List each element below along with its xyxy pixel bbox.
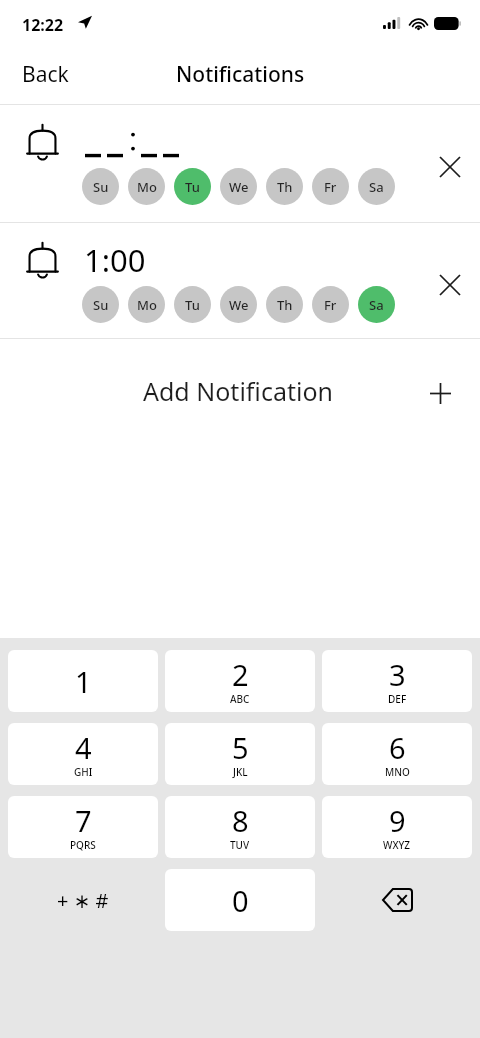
button[interactable]: Tu [174,286,211,323]
button[interactable]: + ∗ # [8,869,158,931]
button[interactable]: We [220,286,257,323]
staticText: 12:22 [22,14,64,36]
button[interactable]: Add notification [424,377,456,409]
staticText: Mo [137,296,157,314]
button[interactable]: Sa [358,168,395,205]
staticText: ABC [230,692,250,706]
button[interactable]: Fr [312,286,349,323]
staticText: 3 [389,655,406,694]
staticText: Sa [369,178,384,196]
staticText: 5 [232,728,249,767]
staticText: Back [22,60,69,89]
staticText: 1:00 [84,239,146,281]
staticText: 6 [389,728,406,767]
staticText: 8 [232,801,249,840]
staticText: 0 [232,881,249,920]
button[interactable]: Mo [128,286,165,323]
staticText: Add Notification [143,374,333,408]
button[interactable]: 5 [165,723,315,785]
staticText: MNO [385,765,410,779]
staticText: + ∗ # [57,887,109,914]
button[interactable]: 4 [8,723,158,785]
button[interactable]: Th [266,168,303,205]
staticText: 4 [75,728,92,767]
button[interactable]: Th [266,286,303,323]
staticText: Fr [324,178,337,196]
staticText: Th [277,296,293,314]
button[interactable]: 9 [322,796,472,858]
staticText: GHI [74,765,93,779]
button[interactable]: 1:00 [0,223,480,340]
button[interactable]: Su [82,286,119,323]
button[interactable]: Backspace [322,869,472,931]
staticText: 1 [75,662,92,701]
staticText: TUV [230,838,250,852]
staticText: 2 [232,655,249,694]
staticText: Sa [369,296,384,314]
staticText: We [229,296,249,314]
staticText: Th [277,178,293,196]
staticText: DEF [388,692,407,706]
staticText: PQRS [70,838,96,852]
button[interactable]: Delete notification [430,265,470,305]
staticText: Su [93,296,109,314]
staticText: Tu [185,296,200,314]
button[interactable]: 2 [165,650,315,712]
staticText: Tu [185,178,200,196]
button[interactable]: Tu [174,168,211,205]
staticText: Mo [137,178,157,196]
staticText: We [229,178,249,196]
button[interactable]: Add Notification [0,339,480,449]
button[interactable]: Su [0,105,480,222]
staticText: Notifications [176,60,305,89]
staticText: 9 [389,801,406,840]
staticText: 7 [75,801,92,840]
button[interactable]: 6 [322,723,472,785]
button[interactable]: 0 [165,869,315,931]
staticText: Su [93,178,109,196]
button[interactable]: 1 [8,650,158,712]
staticText: WXYZ [383,838,411,852]
button[interactable]: 7 [8,796,158,858]
button[interactable]: Delete notification [430,147,470,187]
button[interactable]: Mo [128,168,165,205]
button[interactable]: Back [0,50,91,99]
button[interactable]: 8 [165,796,315,858]
button[interactable]: 3 [322,650,472,712]
staticText: JKL [233,765,248,779]
button[interactable]: We [220,168,257,205]
staticText: Fr [324,296,337,314]
button[interactable]: Sa [358,286,395,323]
button[interactable]: Su [82,168,119,205]
button[interactable]: Fr [312,168,349,205]
